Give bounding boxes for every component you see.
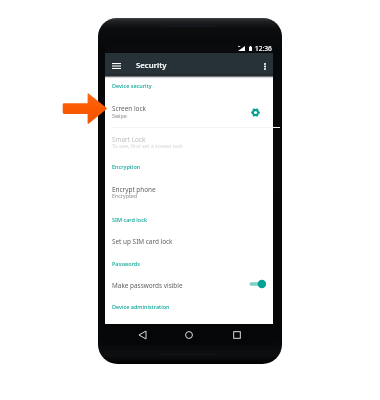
staticText: Encryption <box>112 163 141 170</box>
staticText: Passwords <box>112 260 140 267</box>
button[interactable] <box>105 179 273 209</box>
button[interactable] <box>105 274 273 297</box>
button[interactable]: Open navigation drawer <box>108 59 125 73</box>
button[interactable] <box>105 158 273 179</box>
button[interactable] <box>105 98 273 128</box>
button[interactable] <box>105 230 273 253</box>
staticText: 12:36 <box>255 44 272 53</box>
staticText: Make passwords visible <box>112 281 183 290</box>
staticText: Smart Lock <box>112 135 146 144</box>
staticText: Device security <box>112 82 152 89</box>
button[interactable]: More options <box>257 59 273 73</box>
staticText: Device administration <box>112 303 170 310</box>
staticText: Swipe <box>112 112 127 119</box>
button[interactable] <box>105 297 273 317</box>
button[interactable]: Home <box>178 327 200 343</box>
button[interactable] <box>105 253 273 274</box>
button[interactable]: Back <box>131 327 153 343</box>
button[interactable]: Recent apps <box>226 327 248 343</box>
staticText: SIM card lock <box>112 216 147 223</box>
button[interactable] <box>105 81 273 99</box>
button[interactable]: Screen lock settings <box>247 104 263 120</box>
staticText: Set up SIM card lock <box>112 237 173 246</box>
staticText: Screen lock <box>112 104 146 113</box>
staticText: Encrypt phone <box>112 185 156 194</box>
button[interactable]: Make passwords visible <box>249 278 267 290</box>
staticText: To use, first set a screen lock <box>112 142 183 149</box>
other: Pointer arrow highlighting Screen lock <box>60 90 110 128</box>
button[interactable] <box>105 128 273 159</box>
staticText: Encrypted <box>112 192 138 199</box>
button[interactable] <box>105 209 273 230</box>
staticText: Security <box>136 60 167 71</box>
